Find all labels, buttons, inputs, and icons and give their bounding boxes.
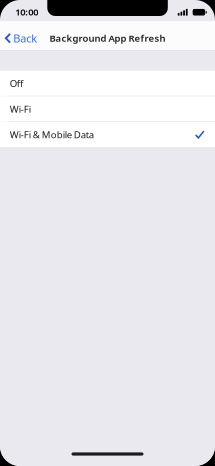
staticText: Background App Refresh: [49, 32, 165, 45]
staticText: Wi-Fi: [10, 102, 31, 115]
button[interactable]: Wi-Fi & Mobile Data: [0, 122, 215, 147]
staticText: Wi-Fi & Mobile Data: [10, 128, 94, 141]
staticText: 10:00: [15, 5, 38, 18]
staticText: Back: [13, 31, 37, 46]
button[interactable]: Back: [0, 26, 43, 51]
staticText: Off: [10, 77, 24, 90]
button[interactable]: Wi-Fi: [0, 96, 215, 121]
button[interactable]: Off: [0, 71, 215, 96]
